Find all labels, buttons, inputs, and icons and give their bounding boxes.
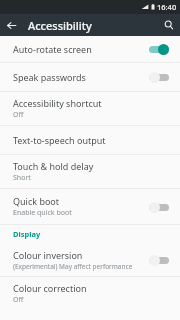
button[interactable]: Back — [0, 14, 22, 36]
staticText: Colour correction — [13, 282, 87, 294]
button[interactable]: Speak passwords — [0, 63, 180, 91]
button[interactable]: Accessibility shortcut — [0, 92, 180, 125]
staticText: Enable quick boot — [13, 208, 72, 218]
staticText: Colour inversion — [13, 249, 83, 261]
staticText: Quick boot — [13, 195, 60, 207]
button[interactable]: Text-to-speech output — [0, 126, 180, 154]
button[interactable]: Colour inversion — [0, 243, 180, 276]
staticText: Display — [13, 229, 41, 239]
button[interactable]: Auto-rotate screen — [0, 36, 180, 62]
staticText: Off — [13, 295, 24, 305]
button[interactable]: Quick boot — [0, 189, 180, 224]
staticText: Speak passwords — [13, 71, 86, 83]
button[interactable]: Toggle off — [146, 252, 172, 268]
button[interactable]: Toggle off — [146, 199, 172, 215]
staticText: (Experimental) May affect performance — [13, 262, 133, 271]
staticText: Auto-rotate screen — [13, 43, 92, 55]
button[interactable]: Toggle off — [146, 69, 172, 85]
staticText: Accessibility shortcut — [13, 97, 102, 109]
staticText: Accessibility — [28, 18, 92, 33]
staticText: Short — [13, 173, 31, 183]
staticText: 16:40 — [157, 2, 177, 12]
staticText: Touch & hold delay — [13, 160, 94, 172]
button[interactable]: Colour correction — [0, 277, 180, 310]
staticText: Off — [13, 110, 24, 120]
button[interactable]: Touch & hold delay — [0, 155, 180, 188]
button[interactable]: Search — [158, 14, 180, 36]
staticText: Text-to-speech output — [13, 134, 106, 146]
button[interactable]: Toggle on — [146, 41, 172, 57]
